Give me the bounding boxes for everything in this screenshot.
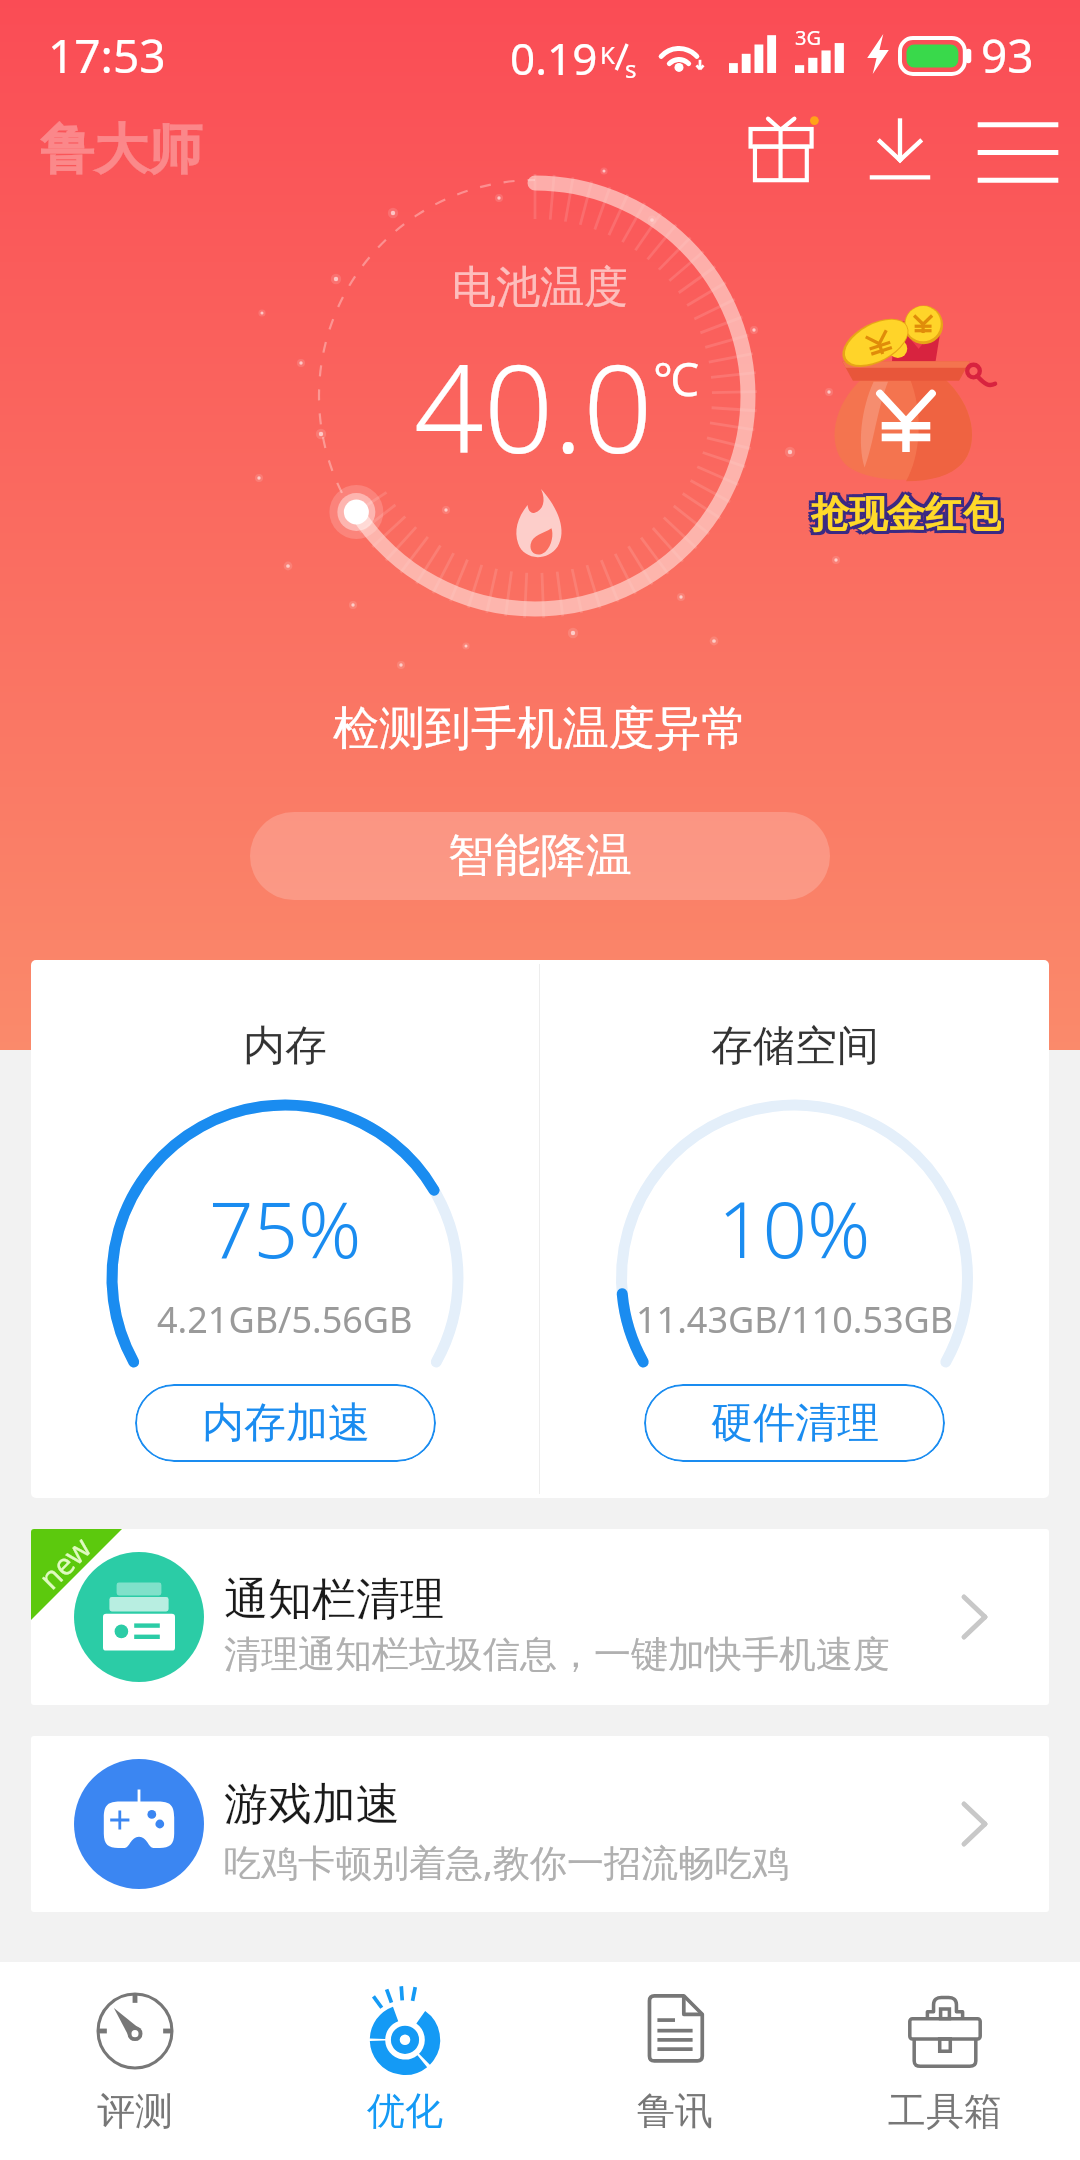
button[interactable]: 硬件清理 xyxy=(644,1384,945,1462)
staticText: 硬件清理 xyxy=(711,1397,879,1450)
staticText: 抢现金红包 xyxy=(814,493,1004,539)
staticText: 11.43GB/110.53GB xyxy=(636,1295,954,1344)
staticText: 抢现金红包 xyxy=(808,493,998,539)
staticText: 抢现金红包 xyxy=(811,487,1001,533)
staticText: 10% xyxy=(718,1175,871,1281)
button[interactable]: Menu xyxy=(968,100,1068,200)
button[interactable]: 工具箱 xyxy=(810,1962,1080,2160)
staticText: 内存加速 xyxy=(202,1397,370,1450)
staticText: 鲁讯 xyxy=(637,2087,713,2135)
staticText: 抢现金红包 xyxy=(808,487,998,533)
staticText: ℃ xyxy=(653,347,699,410)
staticText: 抢现金红包 xyxy=(808,490,998,536)
staticText: 93 xyxy=(981,24,1034,87)
button[interactable]: Gift xyxy=(732,100,832,200)
staticText: 抢现金红包 xyxy=(811,490,1001,536)
button[interactable]: Cash red packet xyxy=(806,296,1006,536)
button[interactable]: 鲁讯 xyxy=(540,1962,810,2160)
button[interactable]: new xyxy=(31,1529,1049,1705)
staticText: 内存 xyxy=(243,1020,327,1073)
staticText: 鲁大师 xyxy=(40,116,202,184)
staticText: s xyxy=(625,52,637,85)
button[interactable]: 智能降温 xyxy=(250,812,830,900)
button[interactable]: 游戏加速 xyxy=(31,1736,1049,1912)
staticText: 工具箱 xyxy=(888,2087,1002,2135)
staticText: 清理通知栏垃圾信息，一键加快手机速度 xyxy=(224,1631,890,1678)
staticText: 3G xyxy=(795,24,821,51)
staticText: new xyxy=(31,1529,100,1598)
staticText: 17:53 xyxy=(48,24,166,87)
staticText: 检测到手机温度异常 xyxy=(333,700,747,758)
staticText: 4.21GB/5.56GB xyxy=(157,1295,413,1344)
staticText: 游戏加速 xyxy=(224,1777,400,1832)
staticText: K xyxy=(600,38,615,71)
staticText: 抢现金红包 xyxy=(811,493,1001,539)
staticText: 75% xyxy=(209,1175,362,1281)
button[interactable]: 评测 xyxy=(0,1962,270,2160)
staticText: 存储空间 xyxy=(711,1020,879,1073)
button[interactable]: Download xyxy=(850,100,950,200)
staticText: 智能降温 xyxy=(448,827,632,885)
staticText: 吃鸡卡顿别着急,教你一招流畅吃鸡 xyxy=(224,1836,789,1887)
staticText: 抢现金红包 xyxy=(814,490,1004,536)
staticText: 电池温度 xyxy=(452,260,628,315)
button[interactable]: 优化 xyxy=(270,1962,540,2160)
staticText: 40.0 xyxy=(414,323,653,489)
button[interactable]: 内存加速 xyxy=(135,1384,436,1462)
staticText: 通知栏清理 xyxy=(224,1572,444,1627)
staticText: 优化 xyxy=(367,2087,443,2135)
staticText: 抢现金红包 xyxy=(814,487,1004,533)
staticText: 评测 xyxy=(97,2087,173,2135)
staticText: 0.19 xyxy=(510,28,598,88)
